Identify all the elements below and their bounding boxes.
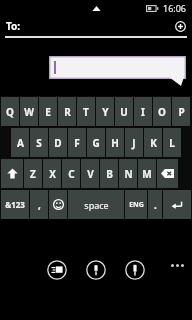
staticText: U [120,105,128,119]
staticText: M [142,167,152,181]
staticText: X [49,167,56,181]
staticText: L [169,136,175,150]
button[interactable]: V [81,159,99,188]
button[interactable]: D [49,128,67,157]
button[interactable]: C [62,159,80,188]
staticText: 16:06 [163,2,187,14]
staticText: O [158,105,166,119]
button[interactable]: space [68,190,124,219]
button[interactable]: &123 [1,190,29,219]
button[interactable]: key [1,159,23,188]
button[interactable]: key [157,159,178,188]
staticText: Y [102,105,109,119]
staticText: R [64,105,71,119]
staticText: . [154,198,157,212]
button[interactable]: J [125,128,143,157]
button[interactable]: More options [169,262,186,269]
staticText: &123 [5,199,25,210]
button[interactable]: Y [96,97,114,126]
button[interactable]: ENG [125,190,147,219]
staticText: P [178,105,185,119]
button[interactable]: M [138,159,156,188]
button[interactable]: T [77,97,95,126]
button[interactable]: N [119,159,137,188]
staticText: S [36,136,42,150]
button[interactable]: Add contact [175,21,186,32]
staticText: K [150,136,157,150]
button[interactable]: U [115,97,133,126]
staticText: F [74,136,80,150]
button[interactable]: , [30,190,48,219]
staticText: T [83,105,89,119]
button[interactable]: W [20,97,38,126]
staticText: C [68,167,75,181]
button[interactable]: L [163,128,181,157]
button[interactable]: New message [47,260,67,280]
button[interactable]: I [134,97,152,126]
staticText: Q [6,105,14,119]
button[interactable]: H [106,128,124,157]
staticText: V [87,167,94,181]
button[interactable]: S [30,128,48,157]
button[interactable]: G [87,128,105,157]
button[interactable]: key [49,190,67,219]
staticText: To: [6,19,21,33]
staticText: E [45,105,51,119]
staticText: D [54,136,62,150]
staticText: B [106,167,113,181]
staticText: I [141,105,145,119]
staticText: ENG [129,200,144,210]
button[interactable] [49,56,186,79]
staticText: H [111,136,119,150]
staticText: space [84,199,109,211]
button[interactable]: F [68,128,86,157]
button[interactable]: Q [1,97,19,126]
button[interactable]: K [144,128,162,157]
staticText: J [132,136,136,150]
staticText: G [92,136,100,150]
button[interactable]: E [39,97,57,126]
button[interactable]: B [100,159,118,188]
staticText: Z [30,167,36,181]
button[interactable]: To: [0,16,192,36]
button[interactable]: R [58,97,76,126]
staticText: W [24,105,34,119]
button[interactable]: Voice input [125,260,145,280]
button[interactable]: Z [24,159,42,188]
staticText: A [17,136,24,150]
button[interactable]: Attach [86,260,106,280]
button[interactable]: P [172,97,190,126]
staticText: N [124,167,133,181]
button[interactable]: A [11,128,29,157]
button[interactable]: X [43,159,61,188]
staticText: , [38,198,41,212]
button[interactable]: . [148,190,162,219]
button[interactable]: O [153,97,171,126]
button[interactable]: key [163,190,191,219]
